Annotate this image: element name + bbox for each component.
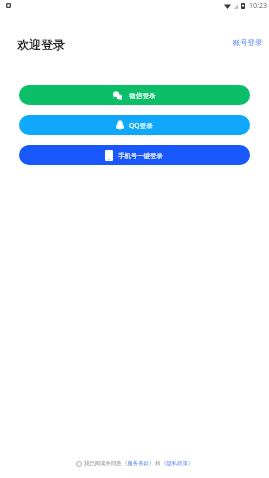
button[interactable]: 《隐私政策》 <box>161 460 194 467</box>
staticText: 和 <box>155 460 161 467</box>
staticText: 微信登录 <box>129 92 156 100</box>
staticText: 手机号一键登录 <box>118 152 163 160</box>
button[interactable]: 手机号一键登录 <box>19 145 250 165</box>
button[interactable]: 《服务条款》 <box>122 460 155 467</box>
staticText: 账号登录 <box>233 38 263 47</box>
button[interactable]: Agree checkbox <box>76 461 82 467</box>
staticText: 10:23 <box>249 1 267 11</box>
button[interactable]: 微信登录 <box>19 85 250 105</box>
button[interactable]: 账号登录 <box>233 37 263 47</box>
button[interactable]: QQ登录 <box>19 115 250 135</box>
staticText: 我已阅读并同意 <box>84 460 122 467</box>
staticText: QQ登录 <box>129 121 153 130</box>
staticText: 欢迎登录 <box>17 37 65 52</box>
